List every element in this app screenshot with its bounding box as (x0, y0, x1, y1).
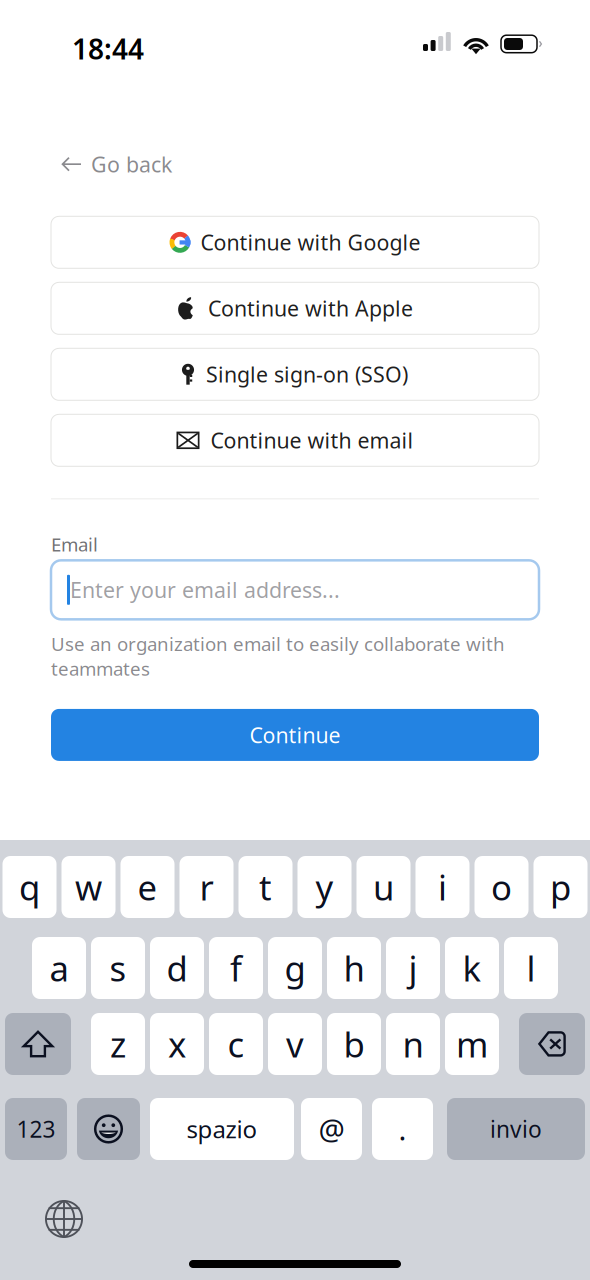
staticText: n (402, 1021, 423, 1067)
staticText: s (109, 945, 126, 991)
staticText: g (284, 945, 305, 991)
staticText: spazio (186, 1113, 257, 1145)
button[interactable]: @ (301, 1098, 362, 1160)
staticText: x (168, 1021, 186, 1067)
staticText: Go back (91, 150, 172, 178)
button[interactable]: Delete (519, 1013, 585, 1075)
button[interactable]: n (386, 1013, 440, 1075)
button[interactable]: g (268, 937, 322, 999)
button[interactable]: . (372, 1098, 433, 1160)
staticText: d (166, 945, 187, 991)
staticText: Continue with Apple (208, 294, 413, 322)
button[interactable]: w (61, 856, 115, 918)
button[interactable]: spazio (150, 1098, 294, 1160)
button[interactable]: i (415, 856, 469, 918)
button[interactable]: invio (447, 1098, 585, 1160)
button[interactable]: t (238, 856, 292, 918)
button[interactable]: l (504, 937, 558, 999)
staticText: Use an organization email to easily coll… (51, 631, 505, 681)
button[interactable]: f (209, 937, 263, 999)
staticText: Single sign-on (SSO) (206, 360, 408, 388)
button[interactable]: Emoji (77, 1098, 140, 1160)
button[interactable]: u (356, 856, 410, 918)
staticText: p (550, 864, 571, 910)
staticText: y (315, 864, 333, 910)
button[interactable]: a (32, 937, 86, 999)
staticText: 18:44 (72, 30, 144, 67)
button[interactable]: s (91, 937, 145, 999)
staticText: w (75, 864, 102, 910)
button[interactable]: Go back (61, 144, 172, 184)
button[interactable]: m (445, 1013, 499, 1075)
button[interactable]: Continue with email (51, 414, 539, 466)
staticText: z (110, 1021, 126, 1067)
staticText: b (343, 1021, 364, 1067)
staticText: v (286, 1021, 304, 1067)
staticText: . (398, 1109, 406, 1148)
button[interactable]: e (120, 856, 174, 918)
button[interactable]: z (91, 1013, 145, 1075)
staticText: i (438, 864, 447, 910)
staticText: q (19, 864, 40, 910)
button[interactable]: c (209, 1013, 263, 1075)
button[interactable]: r (179, 856, 233, 918)
staticText: Continue with Google (200, 228, 420, 256)
staticText: l (526, 945, 535, 991)
button[interactable]: Switch keyboard (41, 1196, 87, 1242)
staticText: t (259, 864, 272, 910)
staticText: a (49, 945, 68, 991)
staticText: e (137, 864, 157, 910)
staticText: invio (490, 1114, 542, 1144)
staticText: @ (318, 1109, 344, 1148)
staticText: Email (51, 532, 98, 557)
button[interactable]: Continue (51, 709, 539, 761)
button[interactable]: Continue with Apple (51, 282, 539, 334)
button[interactable]: h (327, 937, 381, 999)
staticText: u (373, 864, 394, 910)
staticText: r (199, 864, 213, 910)
button[interactable]: Single sign-on (SSO) (51, 348, 539, 400)
staticText: c (227, 1021, 244, 1067)
staticText: j (408, 945, 417, 991)
button[interactable]: Continue with Google (51, 216, 539, 268)
staticText: Continue (249, 721, 340, 749)
button[interactable]: k (445, 937, 499, 999)
staticText: f (230, 945, 242, 991)
button[interactable]: x (150, 1013, 204, 1075)
button[interactable]: Shift (5, 1013, 71, 1075)
button[interactable]: p (533, 856, 587, 918)
staticText: o (491, 864, 512, 910)
staticText: m (456, 1021, 488, 1067)
staticText: 123 (16, 1114, 55, 1144)
button[interactable]: v (268, 1013, 322, 1075)
button[interactable]: 123 (5, 1098, 67, 1160)
button[interactable]: b (327, 1013, 381, 1075)
staticText: Enter your email address... (70, 576, 340, 604)
button[interactable]: y (297, 856, 351, 918)
button[interactable]: q (2, 856, 56, 918)
staticText: h (343, 945, 364, 991)
button[interactable]: j (386, 937, 440, 999)
staticText: Continue with email (210, 426, 413, 454)
staticText: k (462, 945, 481, 991)
button[interactable]: o (474, 856, 528, 918)
button[interactable]: d (150, 937, 204, 999)
